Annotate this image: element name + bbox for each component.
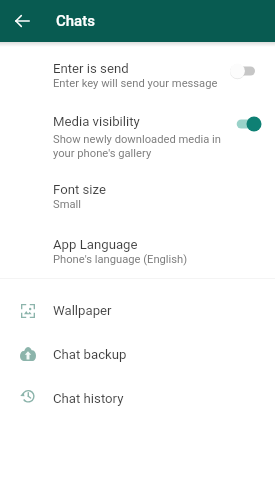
staticText: Chats	[56, 12, 95, 30]
button[interactable]: Back	[0, 0, 42, 42]
button[interactable]: Chat history	[0, 376, 275, 420]
staticText: Chat history	[53, 391, 124, 406]
staticText: Enter is send	[53, 61, 129, 76]
staticText: Phone's language (English)	[53, 253, 188, 266]
button[interactable]: Media visibility	[0, 90, 275, 159]
button[interactable]: Enter is send	[0, 42, 275, 90]
staticText: Font size	[53, 182, 106, 197]
staticText: Small	[53, 198, 81, 211]
button[interactable]: Chat backup	[0, 332, 275, 376]
staticText: Chat backup	[53, 347, 127, 362]
staticText: Show newly downloaded media in your phon…	[53, 133, 221, 159]
staticText: App Language	[53, 237, 138, 252]
staticText: Media visibility	[53, 114, 140, 129]
button[interactable]: App Language	[0, 211, 275, 266]
button[interactable]: Font size	[0, 159, 275, 211]
staticText: Wallpaper	[53, 303, 112, 318]
staticText: Enter key will send your message	[53, 77, 218, 90]
button[interactable]: Wallpaper	[0, 288, 275, 332]
